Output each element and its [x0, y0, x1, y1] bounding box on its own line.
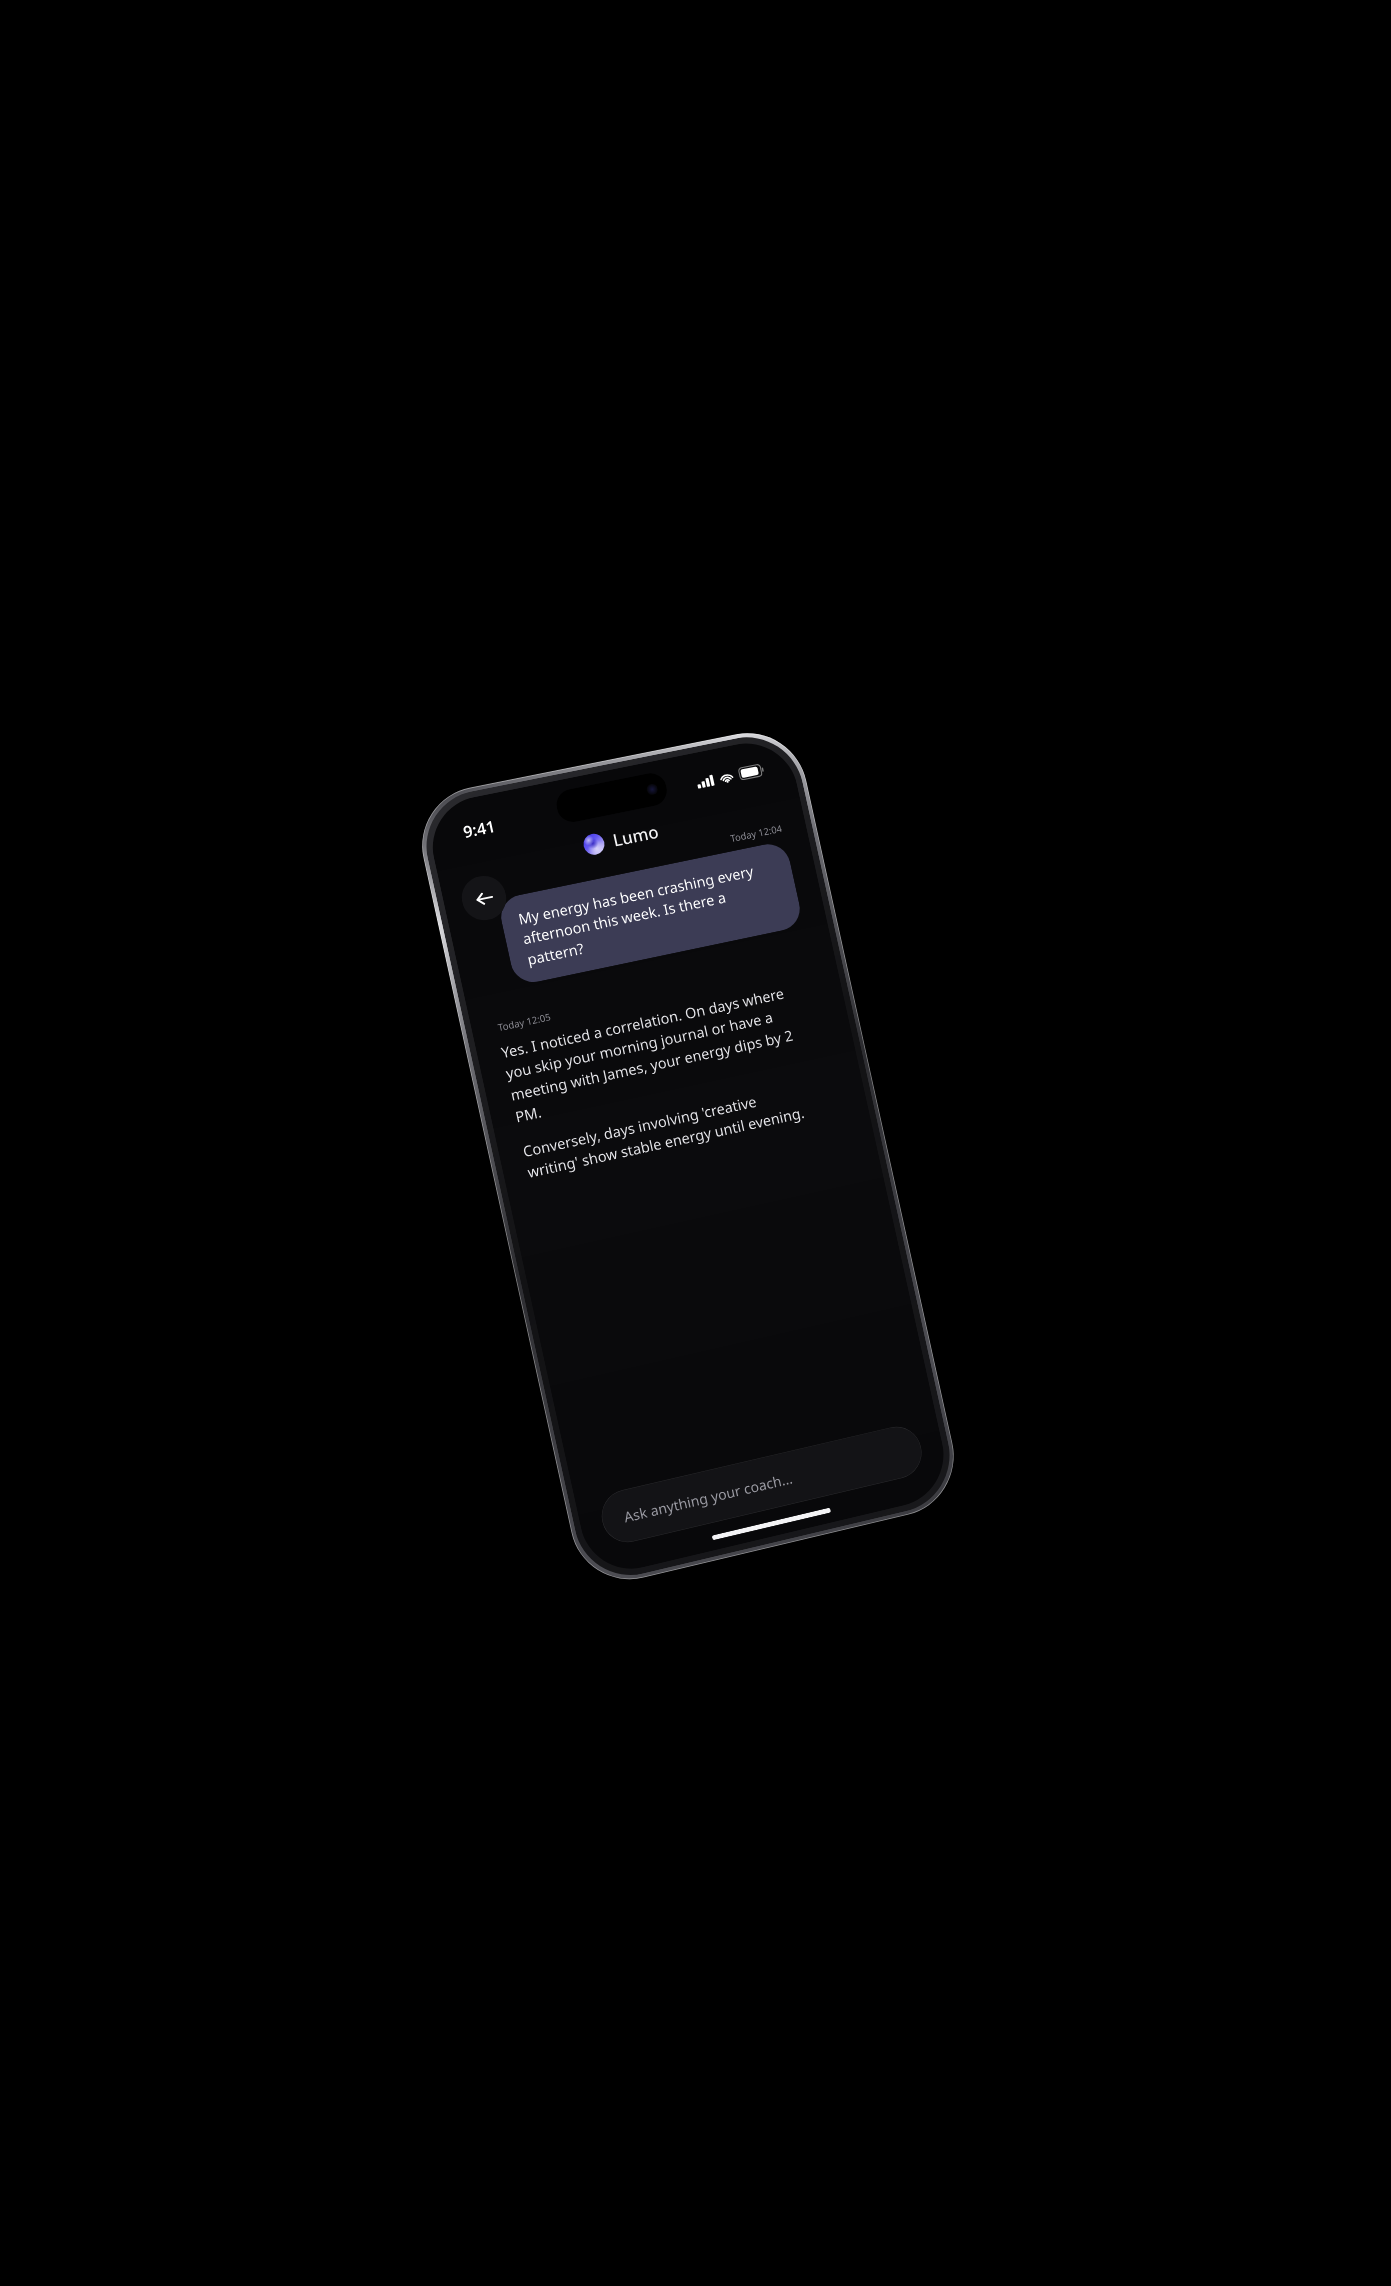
- staticText: Conversely, days involving 'creative wri…: [521, 1080, 815, 1183]
- button[interactable]: Ask anything your coach...: [597, 1422, 927, 1547]
- staticText: Lumo: [611, 820, 661, 852]
- button[interactable]: Yes. I noticed a correlation. On days wh…: [499, 982, 815, 1183]
- staticText: My energy has been crashing every aftern…: [516, 856, 785, 970]
- staticText: Today 12:04: [729, 822, 784, 845]
- staticText: Today 12:05: [497, 1010, 553, 1034]
- button[interactable]: My energy has been crashing every aftern…: [497, 840, 804, 986]
- staticText: Yes. I noticed a correlation. On days wh…: [499, 982, 803, 1127]
- staticText: Ask anything your coach...: [622, 1468, 794, 1527]
- staticText: 9:41: [461, 815, 497, 843]
- button[interactable]: Back: [457, 872, 510, 924]
